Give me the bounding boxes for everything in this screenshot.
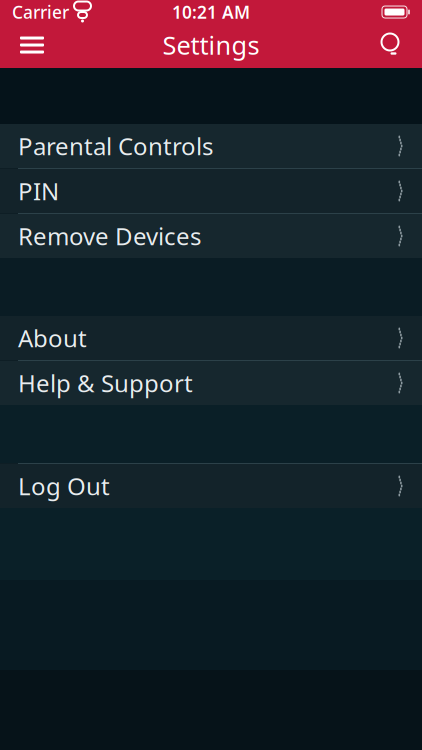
staticText: PIN (18, 175, 59, 207)
button[interactable]: Remove Devices (0, 214, 422, 258)
staticText: Carrier (12, 0, 69, 23)
button[interactable]: PIN (0, 169, 422, 213)
button[interactable]: Help & Support (0, 361, 422, 405)
staticText: 10:21 AM (172, 0, 250, 23)
button[interactable]: Log Out (0, 464, 422, 508)
button[interactable]: Parental Controls (0, 124, 422, 168)
staticText: About (18, 322, 87, 354)
staticText: Help & Support (18, 367, 193, 399)
button[interactable]: About (0, 316, 422, 360)
staticText: Settings (162, 28, 259, 62)
staticText: Remove Devices (18, 220, 201, 252)
button[interactable]: Menu (7, 23, 57, 67)
staticText: Parental Controls (18, 130, 213, 162)
staticText: Log Out (18, 470, 110, 502)
button[interactable]: Search (365, 23, 415, 67)
